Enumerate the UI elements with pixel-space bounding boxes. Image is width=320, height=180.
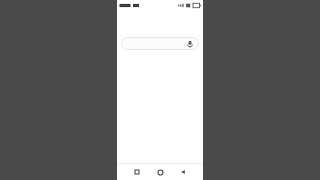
button[interactable]: Home <box>154 166 166 178</box>
button[interactable]: Recent apps <box>131 166 143 178</box>
button[interactable]: Back <box>177 166 189 178</box>
button[interactable]: Voice search <box>121 37 199 50</box>
button[interactable]: Voice search <box>185 39 195 49</box>
